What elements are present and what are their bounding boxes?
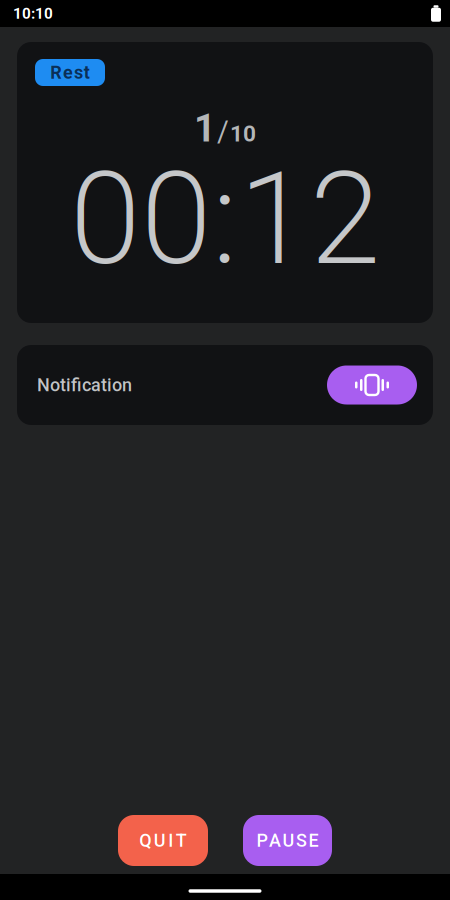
staticText: 00:12 bbox=[70, 145, 380, 294]
staticText: I bbox=[168, 830, 173, 851]
staticText: Notification bbox=[37, 374, 132, 396]
staticText: t bbox=[84, 62, 90, 83]
staticText: E bbox=[308, 830, 318, 851]
staticText: U bbox=[282, 830, 294, 851]
staticText: A bbox=[269, 830, 281, 851]
staticText: s bbox=[74, 62, 83, 83]
staticText: 10 bbox=[230, 120, 256, 147]
staticText: T bbox=[176, 830, 187, 851]
staticText: S bbox=[296, 830, 307, 851]
staticText: U bbox=[154, 830, 166, 851]
staticText: / bbox=[217, 115, 229, 148]
staticText: R bbox=[50, 62, 62, 83]
staticText: e bbox=[63, 62, 73, 83]
staticText: Q bbox=[139, 830, 151, 851]
staticText: 10:10 bbox=[13, 4, 53, 22]
staticText: 1 bbox=[194, 106, 216, 151]
staticText: P bbox=[256, 830, 267, 851]
